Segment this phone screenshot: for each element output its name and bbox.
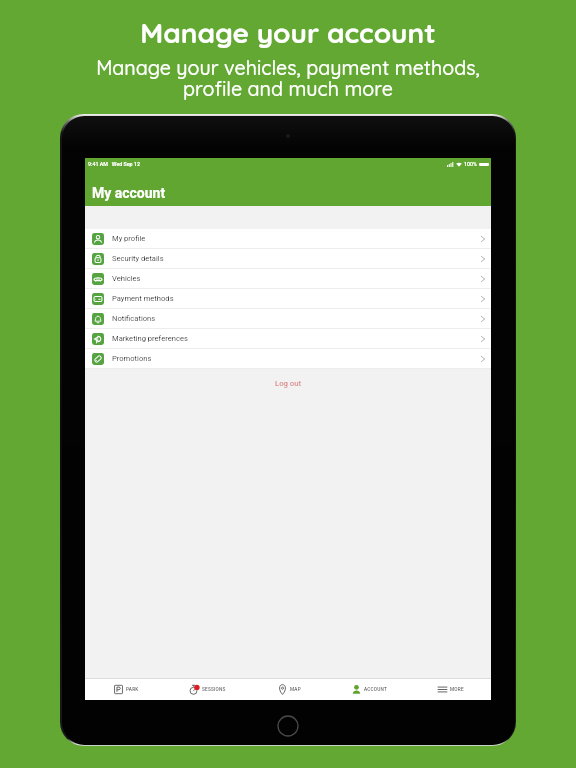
button[interactable]: Notifications bbox=[85, 309, 491, 328]
staticText: MORE bbox=[450, 687, 464, 693]
staticText: Marketing preferences bbox=[112, 334, 188, 343]
button[interactable]: MAP bbox=[248, 679, 329, 700]
button[interactable]: Security details bbox=[85, 249, 491, 268]
staticText: Notifications bbox=[112, 314, 156, 323]
staticText: SESSIONS bbox=[202, 687, 226, 693]
staticText: Manage your vehicles, payment methods, p… bbox=[96, 55, 480, 101]
staticText: Log out bbox=[275, 379, 301, 388]
staticText: Payment methods bbox=[112, 294, 174, 303]
button[interactable]: ACCOUNT bbox=[329, 679, 410, 700]
staticText: 9:41 AM Wed Sep 12 bbox=[88, 161, 140, 167]
staticText: PARK bbox=[126, 687, 139, 693]
button[interactable]: Vehicles bbox=[85, 269, 491, 288]
staticText: MAP bbox=[290, 687, 301, 693]
staticText: 100% bbox=[464, 161, 477, 167]
button[interactable]: Log out bbox=[85, 369, 491, 397]
staticText: My account bbox=[92, 185, 166, 201]
staticText: Manage your account bbox=[140, 15, 436, 50]
staticText: Vehicles bbox=[112, 274, 141, 283]
button[interactable]: My profile bbox=[85, 229, 491, 248]
staticText: Promotions bbox=[112, 354, 152, 363]
staticText: Security details bbox=[112, 254, 164, 263]
button[interactable]: MORE bbox=[410, 679, 491, 700]
button[interactable]: SESSIONS bbox=[167, 679, 248, 700]
button[interactable]: PARK bbox=[85, 679, 167, 700]
button[interactable]: Marketing preferences bbox=[85, 329, 491, 348]
staticText: ACCOUNT bbox=[364, 687, 388, 693]
button[interactable]: Payment methods bbox=[85, 289, 491, 308]
staticText: My profile bbox=[112, 234, 146, 243]
button[interactable]: Promotions bbox=[85, 349, 491, 368]
